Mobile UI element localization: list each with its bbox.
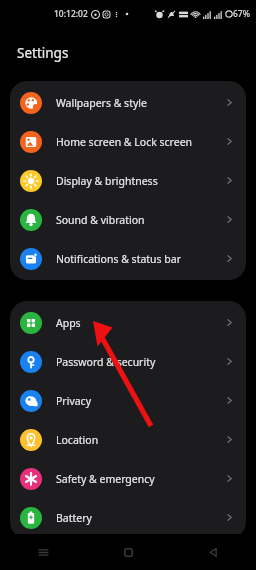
button[interactable]: Back [171, 534, 256, 570]
staticText: Display & brightness [56, 174, 224, 188]
button[interactable]: Safety & emergency [10, 459, 246, 498]
button[interactable]: Home screen & Lock screen [10, 122, 246, 161]
button[interactable]: Privacy [10, 381, 246, 420]
button[interactable]: Notifications & status bar [10, 239, 246, 278]
staticText: Apps [56, 316, 224, 330]
staticText: Safety & emergency [56, 472, 224, 486]
staticText: Notifications & status bar [56, 252, 224, 266]
button[interactable]: Apps [10, 303, 246, 342]
staticText: 67% [233, 8, 250, 20]
button[interactable]: Display & brightness [10, 161, 246, 200]
staticText: Wallpapers & style [56, 96, 224, 110]
button[interactable]: Home [86, 534, 171, 570]
staticText: Sound & vibration [56, 213, 224, 227]
staticText: Settings [17, 44, 69, 62]
staticText: Home screen & Lock screen [56, 135, 224, 149]
staticText: Battery [56, 511, 224, 525]
button[interactable]: Recents [0, 534, 86, 570]
button[interactable]: Battery [10, 498, 246, 537]
button[interactable]: Wallpapers & style [10, 83, 246, 122]
button[interactable]: Password & security [10, 342, 246, 381]
button[interactable]: Sound & vibration [10, 200, 246, 239]
staticText: Privacy [56, 394, 224, 408]
staticText: 10:12:02 [54, 8, 88, 20]
staticText: Password & security [56, 355, 224, 369]
button[interactable]: Location [10, 420, 246, 459]
staticText: Location [56, 433, 224, 447]
